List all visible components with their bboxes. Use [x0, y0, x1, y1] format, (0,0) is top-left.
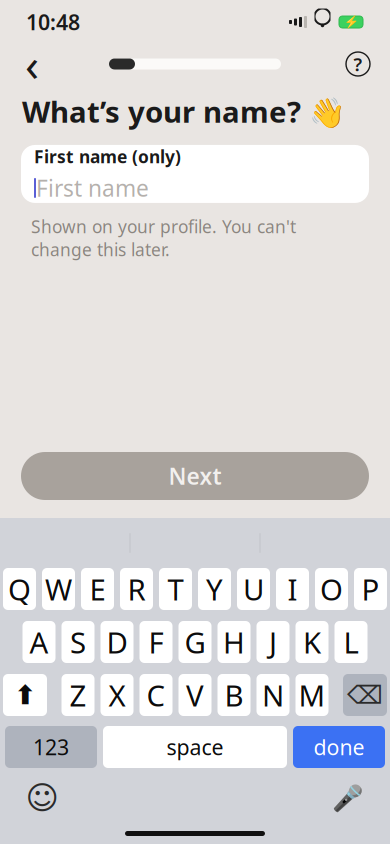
button[interactable]: N: [256, 674, 289, 716]
staticText: What’s your name? 👋: [22, 92, 346, 131]
staticText: First name: [36, 173, 149, 203]
staticText: Z: [69, 675, 86, 714]
button[interactable]: Emoji: [22, 781, 62, 815]
staticText: E: [89, 569, 105, 608]
staticText: done: [313, 733, 364, 761]
staticText: W: [45, 569, 72, 608]
button[interactable]: Y: [198, 568, 231, 610]
button[interactable]: U: [237, 568, 270, 610]
button[interactable]: W: [42, 568, 75, 610]
staticText: ?: [353, 52, 362, 76]
staticText: B: [224, 675, 243, 714]
staticText: Y: [206, 569, 223, 608]
button[interactable]: I: [276, 568, 309, 610]
staticText: Shown on your profile. You can't change …: [31, 215, 296, 261]
button[interactable]: Z: [61, 674, 94, 716]
button[interactable]: T: [159, 568, 192, 610]
button[interactable]: Back: [12, 44, 52, 84]
staticText: M: [298, 675, 325, 714]
button[interactable]: Shift: [3, 674, 47, 716]
staticText: S: [70, 622, 86, 661]
button[interactable]: E: [81, 568, 114, 610]
button[interactable]: A: [22, 621, 55, 663]
staticText: First name (only): [34, 145, 181, 168]
button[interactable]: K: [295, 621, 328, 663]
button[interactable]: C: [139, 674, 172, 716]
staticText: U: [243, 569, 264, 608]
button[interactable]: X: [100, 674, 133, 716]
button[interactable]: D: [100, 621, 133, 663]
staticText: A: [29, 622, 48, 661]
button[interactable]: L: [334, 621, 367, 663]
staticText: ☺: [25, 780, 58, 816]
button[interactable]: R: [120, 568, 153, 610]
staticText: ⌫: [347, 681, 383, 709]
button[interactable]: G: [178, 621, 211, 663]
staticText: K: [303, 622, 321, 661]
button[interactable]: M: [295, 674, 328, 716]
staticText: C: [146, 675, 165, 714]
staticText: L: [343, 622, 358, 661]
staticText: O: [320, 569, 343, 608]
staticText: I: [287, 569, 297, 608]
staticText: V: [186, 675, 204, 714]
staticText: J: [269, 622, 277, 661]
button[interactable]: H: [217, 621, 250, 663]
staticText: 🎤: [332, 783, 364, 812]
staticText: P: [361, 569, 379, 608]
button[interactable]: First name (only): [21, 145, 369, 203]
button[interactable]: Q: [3, 568, 36, 610]
button[interactable]: 123: [5, 726, 97, 768]
staticText: ‹: [25, 34, 39, 94]
staticText: R: [127, 569, 145, 608]
button[interactable]: Delete: [343, 674, 387, 716]
staticText: H: [223, 622, 245, 661]
button[interactable]: F: [139, 621, 172, 663]
button[interactable]: Next: [21, 452, 369, 500]
staticText: Next: [168, 461, 221, 491]
staticText: 10:48: [26, 8, 80, 36]
staticText: space: [166, 733, 223, 761]
staticText: 123: [33, 733, 69, 761]
button[interactable]: Dictation: [328, 781, 368, 815]
staticText: ⚡: [343, 15, 358, 29]
staticText: F: [148, 622, 163, 661]
button[interactable]: done: [293, 726, 385, 768]
button[interactable]: space: [103, 726, 287, 768]
button[interactable]: B: [217, 674, 250, 716]
button[interactable]: V: [178, 674, 211, 716]
staticText: T: [167, 569, 183, 608]
button[interactable]: Help: [338, 44, 378, 84]
button[interactable]: P: [354, 568, 387, 610]
button[interactable]: S: [61, 621, 94, 663]
staticText: Q: [8, 569, 31, 608]
staticText: G: [184, 622, 205, 661]
staticText: D: [106, 622, 127, 661]
staticText: N: [262, 675, 284, 714]
staticText: ⬆: [14, 680, 36, 710]
staticText: X: [108, 675, 125, 714]
button[interactable]: O: [315, 568, 348, 610]
button[interactable]: J: [256, 621, 289, 663]
